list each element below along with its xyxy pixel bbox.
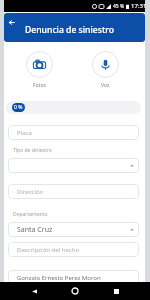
- button[interactable]: Placa: [8, 125, 139, 140]
- staticText: 0 %: [14, 104, 23, 111]
- staticText: Placa: [17, 129, 32, 137]
- button[interactable]: [8, 158, 139, 173]
- staticText: Tipo de siniestro: [13, 147, 52, 154]
- staticText: Denuncia de siniestro: [25, 24, 114, 36]
- staticText: Gonzalo Ernesto Perez Moron: [17, 274, 101, 282]
- staticText: Descripción del hecho: [17, 246, 80, 254]
- button[interactable]: Dirección: [8, 184, 139, 199]
- staticText: Fotos: [33, 82, 46, 89]
- button[interactable]: Santa Cruz: [8, 222, 139, 237]
- button[interactable]: Voz: [92, 51, 119, 78]
- button[interactable]: Gonzalo Ernesto Perez Moron: [8, 270, 139, 285]
- staticText: Santa Cruz: [17, 225, 53, 235]
- button[interactable]: Recents: [109, 284, 123, 298]
- button[interactable]: Back: [27, 284, 41, 298]
- button[interactable]: Home: [68, 284, 82, 298]
- button[interactable]: Back: [5, 16, 18, 29]
- staticText: Dirección: [17, 188, 44, 196]
- staticText: 17:31: [131, 2, 147, 10]
- staticText: Departamento: [13, 211, 48, 218]
- button[interactable]: Fotos: [26, 51, 53, 78]
- staticText: 45 %: [113, 3, 125, 10]
- staticText: Voz: [101, 82, 110, 89]
- button[interactable]: Descripción del hecho: [8, 242, 139, 257]
